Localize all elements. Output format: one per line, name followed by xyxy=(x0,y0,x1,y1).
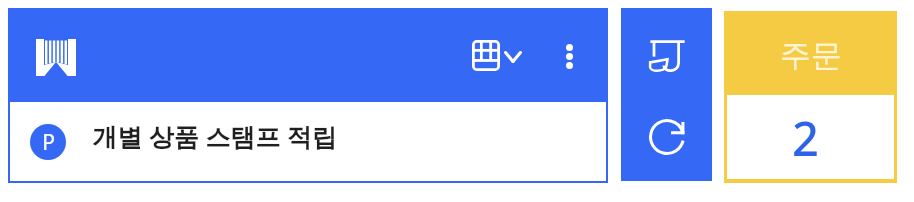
button[interactable]: P xyxy=(8,100,608,183)
button[interactable]: More options xyxy=(542,29,596,83)
button[interactable]: 주문 xyxy=(724,11,897,95)
button[interactable]: Refresh xyxy=(621,96,712,181)
staticText: P xyxy=(42,128,55,157)
staticText: 개별 상품 스탬프 적립 xyxy=(92,119,337,153)
staticText: 주문 xyxy=(780,36,842,75)
button[interactable]: Home xyxy=(28,26,84,82)
button[interactable]: Pour xyxy=(621,8,712,96)
button[interactable]: 2 xyxy=(727,95,894,179)
button[interactable]: Select table xyxy=(464,34,532,77)
staticText: 2 xyxy=(792,106,819,170)
